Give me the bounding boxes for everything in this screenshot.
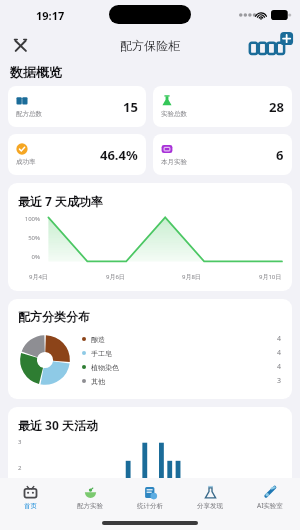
button[interactable]: Tools — [6, 31, 34, 59]
staticText: 9月4日 — [29, 273, 48, 281]
staticText: 最近 7 天成功率 — [18, 193, 104, 209]
staticText: 配方总数 — [16, 110, 42, 118]
staticText: 6 — [276, 146, 284, 164]
staticText: 统计分析 — [137, 502, 163, 510]
staticText: 9月8日 — [182, 273, 201, 281]
staticText: 50% — [18, 234, 40, 242]
staticText: 其他 — [91, 377, 277, 386]
button[interactable]: 最近 30 天活动 — [8, 407, 292, 507]
button[interactable]: 本月实验 — [153, 134, 292, 175]
staticText: 配方保险柜 — [120, 38, 180, 53]
staticText: 数据概览 — [10, 64, 62, 80]
button[interactable]: 分享发现 — [180, 478, 240, 516]
staticText: 酿造 — [91, 335, 277, 344]
button[interactable]: 配方分类分布 — [8, 299, 292, 399]
staticText: 28 — [269, 98, 284, 116]
staticText: 成功率 — [16, 158, 36, 166]
staticText: 本月实验 — [161, 158, 187, 166]
button[interactable]: AI实验室 — [240, 478, 300, 516]
staticText: 0% — [18, 253, 40, 261]
button[interactable]: 最近 7 天成功率 — [8, 183, 292, 291]
button[interactable]: 统计分析 — [120, 478, 180, 516]
button[interactable]: 实验总数 — [153, 86, 292, 127]
staticText: 配方实验 — [77, 502, 103, 510]
staticText: 4 — [277, 334, 282, 344]
staticText: 3 — [277, 376, 282, 386]
button[interactable]: 配方实验 — [60, 478, 120, 516]
staticText: 15 — [123, 98, 138, 116]
staticText: 19:17 — [36, 8, 65, 23]
staticText: 配方分类分布 — [18, 309, 90, 324]
staticText: 3 — [18, 438, 22, 446]
staticText: AI实验室 — [257, 501, 283, 510]
staticText: 4 — [277, 348, 282, 358]
staticText: 植物染色 — [91, 363, 277, 372]
staticText: 分享发现 — [197, 502, 223, 510]
staticText: 手工皂 — [91, 349, 277, 358]
button[interactable]: 配方总数 — [8, 86, 146, 127]
staticText: 实验总数 — [161, 110, 187, 118]
staticText: 9月6日 — [106, 273, 125, 281]
staticText: 9月10日 — [259, 273, 282, 281]
button[interactable]: 成功率 — [8, 134, 146, 175]
staticText: 4 — [277, 362, 282, 372]
staticText: 100% — [18, 215, 40, 223]
staticText: 2 — [18, 464, 22, 472]
staticText: 最近 30 天活动 — [18, 417, 98, 433]
button[interactable]: Add 2025 — [248, 31, 294, 59]
button[interactable]: 首页 — [0, 478, 60, 516]
staticText: 首页 — [24, 502, 37, 510]
staticText: 46.4% — [100, 146, 138, 164]
